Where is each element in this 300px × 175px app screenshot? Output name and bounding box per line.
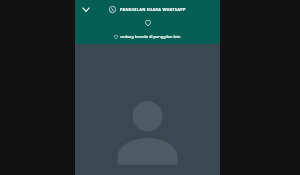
button[interactable]: Minimize call xyxy=(79,2,93,16)
staticText: sedang berada di panggilan lain xyxy=(120,34,181,39)
staticText: PANGGILAN SUARA WHATSAPP xyxy=(120,7,186,12)
